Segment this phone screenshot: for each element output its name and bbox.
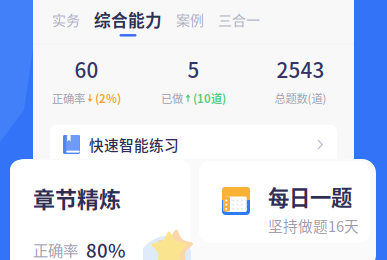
- staticText: 章节精炼: [33, 182, 121, 214]
- button[interactable]: 实务: [45, 0, 87, 44]
- staticText: 5: [187, 54, 199, 84]
- staticText: 正确率: [33, 238, 78, 260]
- staticText: 坚持做题16天: [268, 215, 359, 236]
- staticText: 快速智能练习: [89, 134, 179, 155]
- button[interactable]: 每日一题: [199, 161, 370, 243]
- staticText: 综合能力: [94, 7, 162, 31]
- button[interactable]: 章节精炼: [10, 160, 190, 260]
- staticText: 2543: [276, 54, 324, 84]
- staticText: 实务: [52, 9, 80, 30]
- staticText: 案例: [176, 9, 204, 30]
- staticText: 总题数(道): [274, 90, 326, 106]
- staticText: 三合一: [218, 9, 260, 30]
- staticText: 已做: [161, 90, 183, 106]
- button[interactable]: 三合一: [211, 0, 267, 44]
- staticText: 80%: [86, 236, 126, 260]
- staticText: 正确率: [52, 90, 85, 106]
- staticText: (10道): [193, 90, 226, 106]
- button[interactable]: 综合能力: [87, 0, 169, 44]
- button[interactable]: 案例: [169, 0, 211, 44]
- staticText: 60: [74, 54, 98, 84]
- button[interactable]: 快速智能练习: [50, 125, 337, 164]
- staticText: (2%): [95, 90, 121, 106]
- staticText: 每日一题: [268, 181, 352, 212]
